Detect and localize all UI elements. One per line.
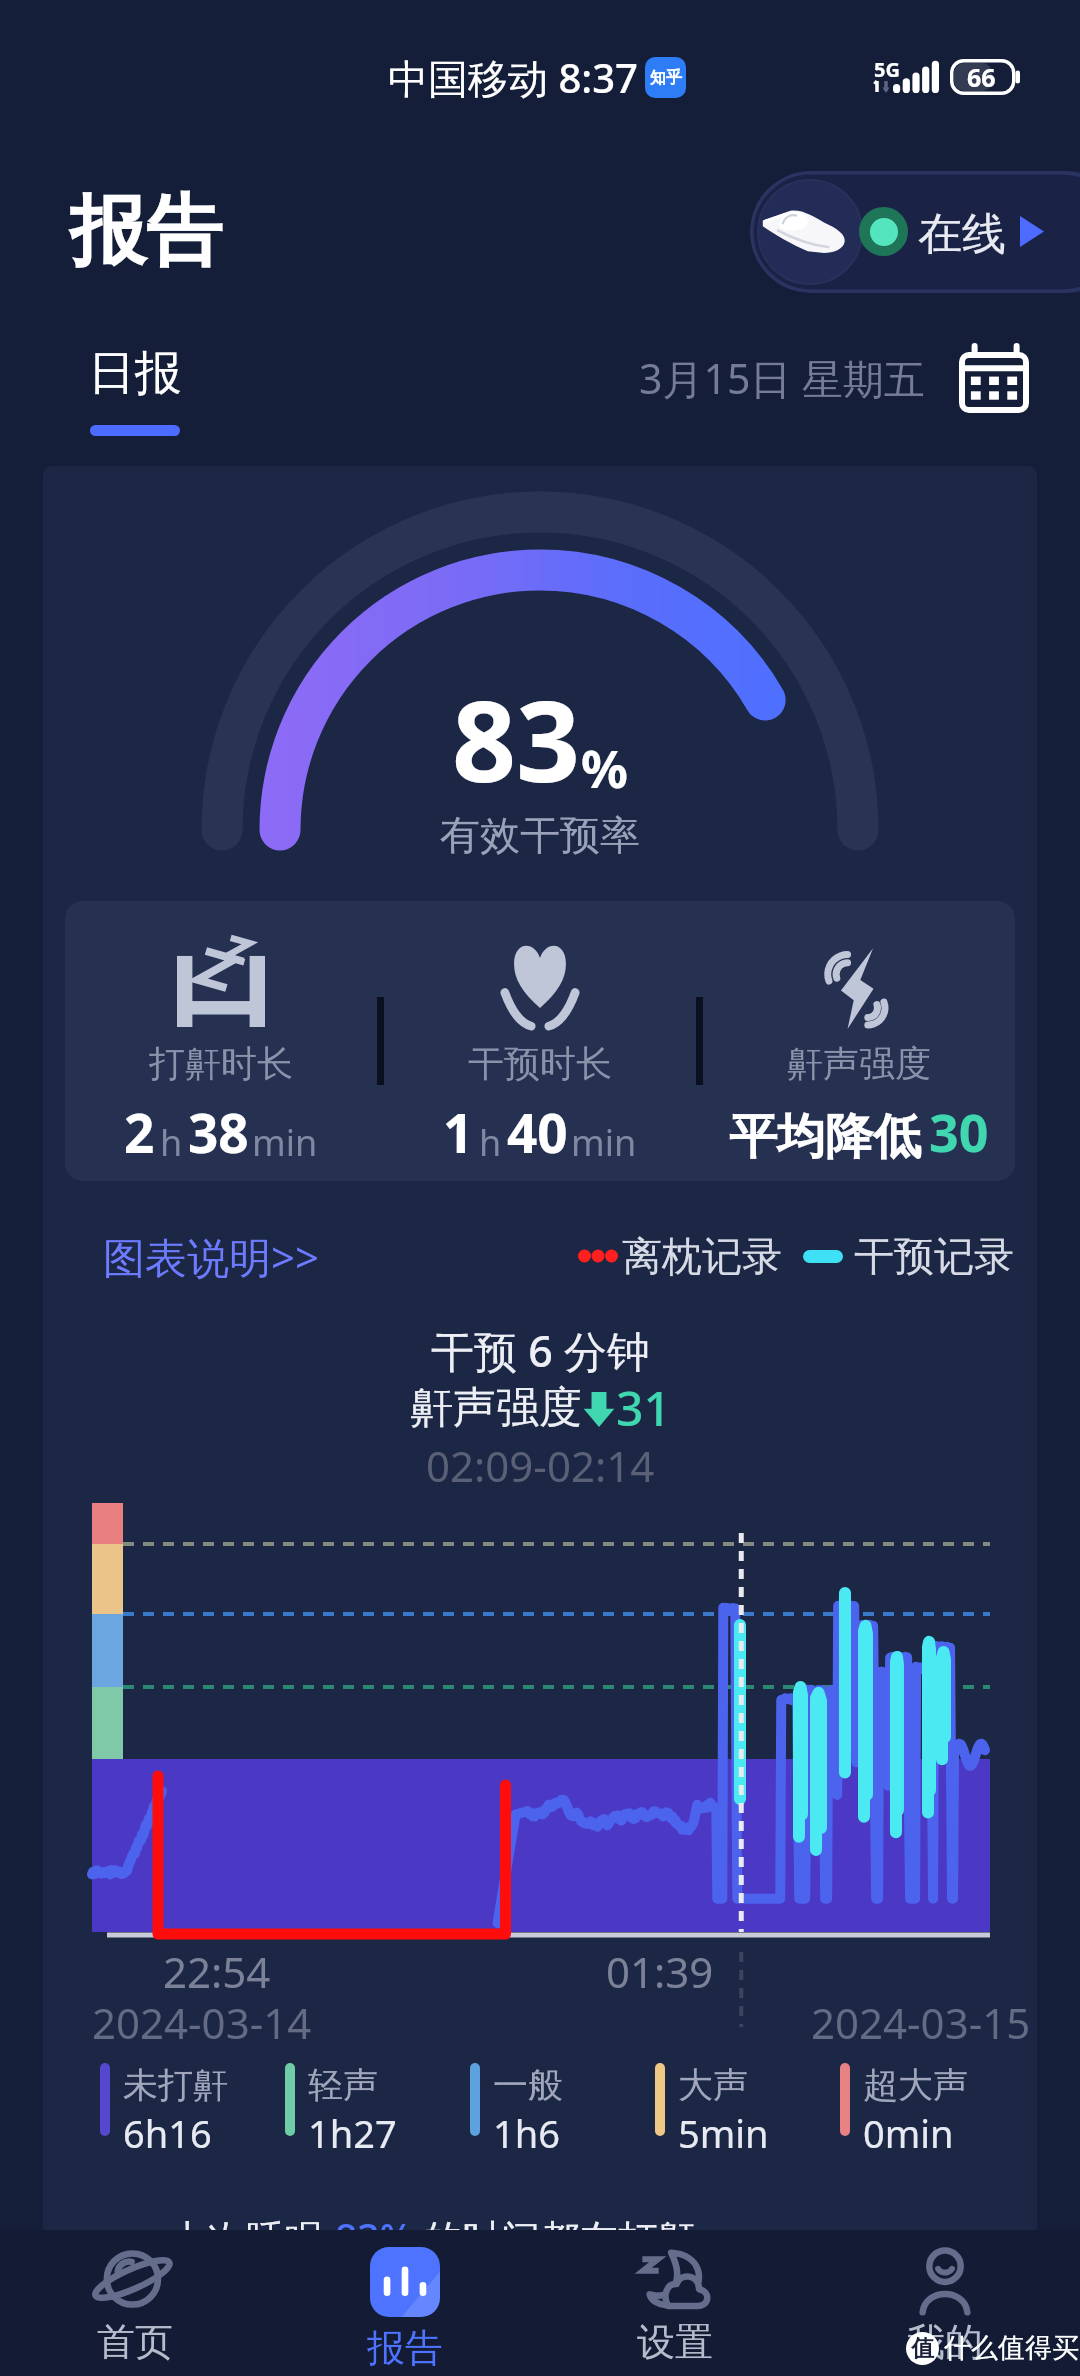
staticText: 知乎 xyxy=(650,68,682,88)
staticText: 30 xyxy=(929,1096,989,1167)
staticText: 值 xyxy=(911,2334,934,2363)
staticText: min xyxy=(571,1118,637,1167)
button[interactable]: 图表说明>> xyxy=(103,1228,320,1285)
staticText: 31 xyxy=(616,1375,671,1440)
button[interactable]: 日报 xyxy=(88,344,182,436)
staticText: 5G xyxy=(874,56,900,83)
staticText: 在线 xyxy=(918,207,1006,262)
staticText: 02:09-02:14 xyxy=(426,1437,655,1494)
staticText: 38 xyxy=(188,1096,249,1168)
staticText: % xyxy=(581,732,628,803)
staticText: 1h6 xyxy=(493,2107,560,2159)
staticText: h xyxy=(160,1118,183,1167)
staticText: 40 xyxy=(507,1096,568,1168)
staticText: 报告 xyxy=(367,2324,443,2372)
staticText: min xyxy=(252,1118,318,1167)
button[interactable]: 在线 xyxy=(750,171,1080,293)
staticText: 我的 xyxy=(907,2318,983,2366)
staticText: 22:54 xyxy=(163,1943,271,2000)
staticText: h xyxy=(479,1118,502,1167)
staticText: 5min xyxy=(678,2107,769,2159)
button[interactable]: 鼾声强度 xyxy=(703,901,1015,1181)
staticText: 2024-03-15 xyxy=(811,1994,1031,2051)
button[interactable]: Settings xyxy=(540,2230,810,2376)
button[interactable]: 打鼾时长 xyxy=(65,901,377,1181)
staticText: 鼾声强度 xyxy=(787,1041,931,1086)
button[interactable]: Home xyxy=(0,2230,270,2376)
staticText: 0min xyxy=(863,2107,954,2159)
staticText: 首页 xyxy=(97,2318,173,2366)
staticText: 日报 xyxy=(88,344,182,403)
button[interactable]: 报告 xyxy=(270,2230,540,2376)
button[interactable]: 3月15日 星期五 xyxy=(639,343,1029,413)
staticText: 上次睡眠 xyxy=(168,2211,335,2236)
button[interactable]: 干预时长 xyxy=(384,901,696,1181)
staticText: 66 xyxy=(967,60,996,94)
staticText: 什么值得买 xyxy=(944,2331,1079,2365)
staticText: 鼾声强度 xyxy=(410,1381,582,1435)
staticText: 平均降低 xyxy=(729,1107,921,1167)
staticText: 01:39 xyxy=(606,1943,714,2000)
staticText: 干预时长 xyxy=(468,1041,612,1086)
staticText: 轻声 xyxy=(308,2063,378,2107)
staticText: 超大声 xyxy=(863,2063,968,2107)
staticText: 2 xyxy=(124,1096,155,1168)
other: Settings xyxy=(632,2247,718,2311)
staticText: 大声 xyxy=(678,2063,748,2107)
staticText: 干预记录 xyxy=(854,1231,1014,1281)
button[interactable]: Profile xyxy=(810,2230,1080,2376)
staticText: 未打鼾 xyxy=(123,2063,228,2107)
staticText: 中国移动 8:37 xyxy=(388,50,638,105)
staticText: 设置 xyxy=(637,2318,713,2366)
staticText: 1h27 xyxy=(308,2107,397,2159)
staticText: 2024-03-14 xyxy=(92,1994,312,2051)
other: Calendar xyxy=(959,343,1029,413)
staticText: 6h16 xyxy=(123,2107,212,2159)
staticText: 一般 xyxy=(493,2063,563,2107)
staticText: 干预 6 分钟 xyxy=(431,1321,650,1380)
other: Profile xyxy=(902,2247,988,2311)
staticText: 83 xyxy=(452,662,581,815)
staticText: 有效干预率 xyxy=(440,810,640,860)
other: Home xyxy=(92,2247,178,2311)
staticText: 3月15日 星期五 xyxy=(639,350,926,406)
staticText: 报告 xyxy=(70,184,222,280)
staticText: 打鼾时长 xyxy=(149,1041,293,1086)
staticText: 1 xyxy=(443,1096,474,1168)
staticText: 83% xyxy=(335,2211,413,2236)
staticText: 的时间都在打鼾 xyxy=(413,2211,697,2236)
staticText: 离枕记录 xyxy=(622,1231,782,1281)
